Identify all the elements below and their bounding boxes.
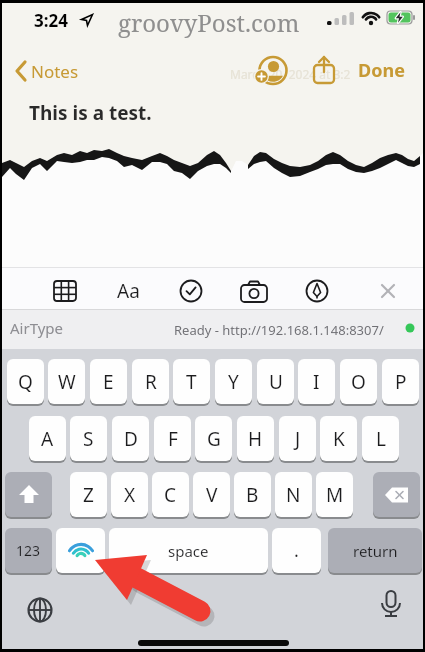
staticText: C bbox=[164, 482, 177, 508]
button[interactable] bbox=[308, 53, 342, 87]
button[interactable] bbox=[23, 593, 57, 627]
button[interactable] bbox=[5, 472, 52, 517]
staticText: U bbox=[269, 369, 283, 395]
button[interactable]: Aa bbox=[110, 277, 146, 305]
button[interactable]: P bbox=[382, 359, 419, 404]
staticText: return bbox=[353, 541, 398, 561]
button[interactable]: J bbox=[279, 416, 316, 461]
staticText: This is a test. bbox=[29, 100, 152, 126]
button[interactable]: Z bbox=[70, 472, 107, 517]
button[interactable]: U bbox=[257, 359, 294, 404]
button[interactable]: K bbox=[320, 416, 357, 461]
staticText: O bbox=[351, 369, 366, 395]
staticText: K bbox=[333, 426, 345, 452]
staticText: L bbox=[376, 426, 386, 452]
staticText: 3:24 bbox=[34, 9, 68, 32]
staticText: I bbox=[313, 369, 320, 395]
staticText: space bbox=[168, 541, 209, 561]
staticText: March 20, 2024 at 3:2 bbox=[230, 66, 351, 82]
button[interactable]: S bbox=[70, 416, 107, 461]
button[interactable]: . bbox=[272, 528, 321, 573]
button[interactable]: O bbox=[340, 359, 377, 404]
button[interactable]: Done bbox=[352, 57, 405, 83]
staticText: Y bbox=[228, 369, 239, 395]
button[interactable]: V bbox=[193, 472, 230, 517]
button[interactable] bbox=[252, 52, 290, 90]
staticText: Ready - http://192.168.1.148:8307/ bbox=[174, 321, 384, 339]
staticText: Z bbox=[83, 482, 94, 508]
button[interactable]: Notes bbox=[13, 57, 79, 85]
staticText: R bbox=[145, 369, 157, 395]
staticText: G bbox=[207, 426, 221, 452]
staticText: Q bbox=[18, 369, 33, 395]
staticText: V bbox=[206, 482, 218, 508]
button[interactable]: X bbox=[111, 472, 148, 517]
staticText: 123 bbox=[16, 541, 41, 560]
button[interactable]: 123 bbox=[5, 528, 52, 573]
staticText: A bbox=[41, 426, 54, 452]
button[interactable]: G bbox=[195, 416, 232, 461]
staticText: Done bbox=[358, 58, 405, 83]
button[interactable] bbox=[56, 528, 105, 573]
button[interactable] bbox=[374, 588, 408, 622]
button[interactable]: A bbox=[29, 416, 66, 461]
button[interactable] bbox=[238, 277, 270, 305]
button[interactable]: H bbox=[237, 416, 274, 461]
button[interactable] bbox=[176, 277, 206, 305]
staticText: P bbox=[395, 369, 407, 395]
staticText: Aa bbox=[117, 278, 140, 304]
button[interactable]: T bbox=[173, 359, 210, 404]
button[interactable]: C bbox=[152, 472, 189, 517]
button[interactable]: I bbox=[298, 359, 335, 404]
button[interactable]: D bbox=[112, 416, 149, 461]
button[interactable] bbox=[302, 277, 332, 305]
staticText: M bbox=[326, 482, 344, 508]
staticText: T bbox=[186, 369, 197, 395]
button[interactable]: Y bbox=[215, 359, 252, 404]
staticText: H bbox=[248, 426, 263, 452]
staticText: . bbox=[294, 538, 299, 563]
button[interactable]: R bbox=[132, 359, 169, 404]
button[interactable]: Q bbox=[7, 359, 44, 404]
staticText: W bbox=[58, 369, 76, 395]
button[interactable] bbox=[374, 277, 402, 305]
button[interactable]: return bbox=[328, 528, 422, 573]
button[interactable]: M bbox=[316, 472, 353, 517]
staticText: N bbox=[286, 482, 301, 508]
button[interactable]: W bbox=[48, 359, 85, 404]
button[interactable]: E bbox=[90, 359, 127, 404]
staticText: X bbox=[124, 482, 136, 508]
staticText: groovyPost.com bbox=[118, 6, 300, 39]
staticText: E bbox=[103, 369, 114, 395]
button[interactable] bbox=[373, 472, 420, 517]
button[interactable]: B bbox=[234, 472, 271, 517]
staticText: Notes bbox=[31, 60, 79, 83]
button[interactable]: N bbox=[275, 472, 312, 517]
staticText: J bbox=[295, 426, 301, 452]
button[interactable] bbox=[50, 277, 80, 305]
staticText: F bbox=[168, 426, 178, 452]
staticText: AirType bbox=[10, 318, 64, 338]
button[interactable]: F bbox=[154, 416, 191, 461]
staticText: D bbox=[124, 426, 138, 452]
staticText: S bbox=[83, 426, 94, 452]
button[interactable]: space bbox=[109, 528, 268, 573]
staticText: B bbox=[246, 482, 259, 508]
button[interactable]: L bbox=[362, 416, 399, 461]
